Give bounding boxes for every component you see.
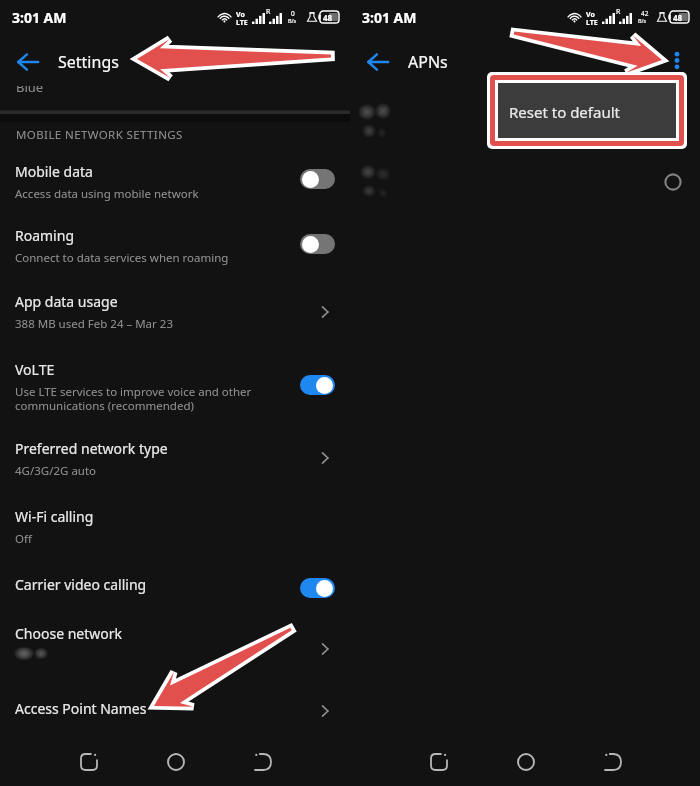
button[interactable]: Reset to default [498,83,676,138]
button[interactable]: VoLTE [0,348,350,410]
staticText: 3:01 AM [362,8,417,27]
button[interactable]: Toggle off [300,234,335,254]
button[interactable]: Recents [75,748,103,776]
staticText: Use LTE services to improve voice and ot… [15,384,252,414]
staticText: Roaming [15,226,74,245]
staticText: Vo LTE [236,10,248,27]
staticText: Settings [58,51,119,73]
button[interactable]: Access Point Names [0,687,350,717]
staticText: B/s [638,17,647,24]
staticText: R [616,7,621,17]
staticText: Off [15,531,32,547]
staticText: Connect to data services when roaming [15,250,229,266]
staticText: App data usage [15,292,118,311]
button[interactable]: Recents [425,748,453,776]
button[interactable]: Select APN [662,171,684,193]
staticText: R [266,7,271,17]
button[interactable]: Home [162,748,190,776]
button[interactable]: Choose network [0,612,350,658]
staticText: Preferred network type [15,439,168,458]
staticText: 3:01 AM [12,8,67,27]
button[interactable]: Wi-Fi calling [0,495,350,541]
staticText: Vo LTE [586,10,598,27]
button[interactable]: Mobile data [0,150,350,196]
staticText: 0 [291,9,295,18]
staticText: Access data using mobile network [15,186,199,202]
staticText: 42 [641,9,649,18]
staticText: B/s [288,17,297,24]
staticText: 388 MB used Feb 24 – Mar 23 [15,316,173,332]
staticText: Wi-Fi calling [15,507,94,526]
staticText: Reset to default [509,102,620,122]
button[interactable]: Preferred network type [0,427,350,473]
staticText: MOBILE NETWORK SETTINGS [16,127,183,143]
button[interactable]: Choose network [314,638,336,660]
button[interactable]: Carrier video calling [0,563,350,593]
staticText: APNs [408,51,448,73]
staticText: 48 [673,12,683,23]
button[interactable]: App data usage [0,280,350,326]
staticText: 4G/3G/2G auto [15,463,97,479]
staticText: Carrier video calling [15,575,147,594]
button[interactable]: Back [249,748,277,776]
staticText: Choose network [15,624,123,643]
staticText: Blue [16,78,44,96]
button[interactable]: Navigate up [9,43,46,80]
button[interactable]: More options [661,44,693,76]
button[interactable]: Toggle on [300,375,335,395]
button[interactable]: Access Point Names [314,700,336,722]
button[interactable]: Navigate up [359,43,396,80]
staticText: Mobile data [15,162,93,181]
staticText: Access Point Names [15,699,147,718]
button[interactable]: Toggle off [300,169,335,189]
button[interactable]: Back [599,748,627,776]
button[interactable]: Roaming [0,214,350,260]
button[interactable]: Toggle on [300,578,335,598]
staticText: 48 [323,12,333,23]
button[interactable]: App data usage [314,301,336,323]
button[interactable]: Preferred network type [314,447,336,469]
staticText: VoLTE [15,360,55,379]
button[interactable]: Home [512,748,540,776]
